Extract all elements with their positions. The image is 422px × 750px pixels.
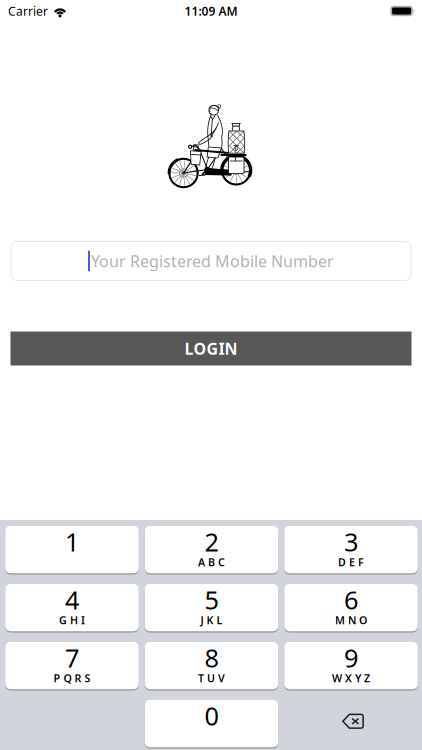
button[interactable]: 1: [5, 526, 139, 574]
staticText: 4: [65, 583, 79, 616]
staticText: 1: [65, 525, 79, 558]
staticText: Your Registered Mobile Number: [91, 250, 334, 272]
staticText: J K L: [200, 613, 222, 627]
staticText: 9: [344, 641, 358, 674]
staticText: 6: [344, 583, 358, 616]
staticText: G H I: [59, 613, 85, 627]
staticText: 0: [204, 699, 218, 732]
staticText: M N O: [335, 613, 367, 627]
staticText: P Q R S: [53, 671, 90, 685]
button[interactable]: 0: [145, 700, 278, 748]
staticText: A B C: [198, 555, 225, 569]
staticText: Carrier: [8, 3, 48, 19]
staticText: W X Y Z: [332, 671, 370, 685]
staticText: 7: [65, 641, 79, 674]
button[interactable]: 4: [5, 584, 139, 632]
staticText: 8: [204, 641, 218, 674]
staticText: D E F: [338, 555, 364, 569]
button[interactable]: 2: [145, 526, 278, 574]
button[interactable]: 8: [145, 642, 278, 690]
staticText: 2: [204, 525, 218, 558]
button[interactable]: Delete: [284, 700, 418, 748]
staticText: LOGIN: [184, 338, 237, 359]
staticText: 5: [204, 583, 218, 616]
staticText: 3: [344, 525, 358, 558]
button[interactable]: LOGIN: [10, 331, 411, 365]
button[interactable]: 6: [284, 584, 418, 632]
button[interactable]: 9: [284, 642, 418, 690]
button[interactable]: 5: [145, 584, 278, 632]
button[interactable]: 3: [284, 526, 418, 574]
button[interactable]: 7: [5, 642, 139, 690]
staticText: T U V: [198, 671, 225, 685]
staticText: 11:09 AM: [184, 3, 237, 19]
